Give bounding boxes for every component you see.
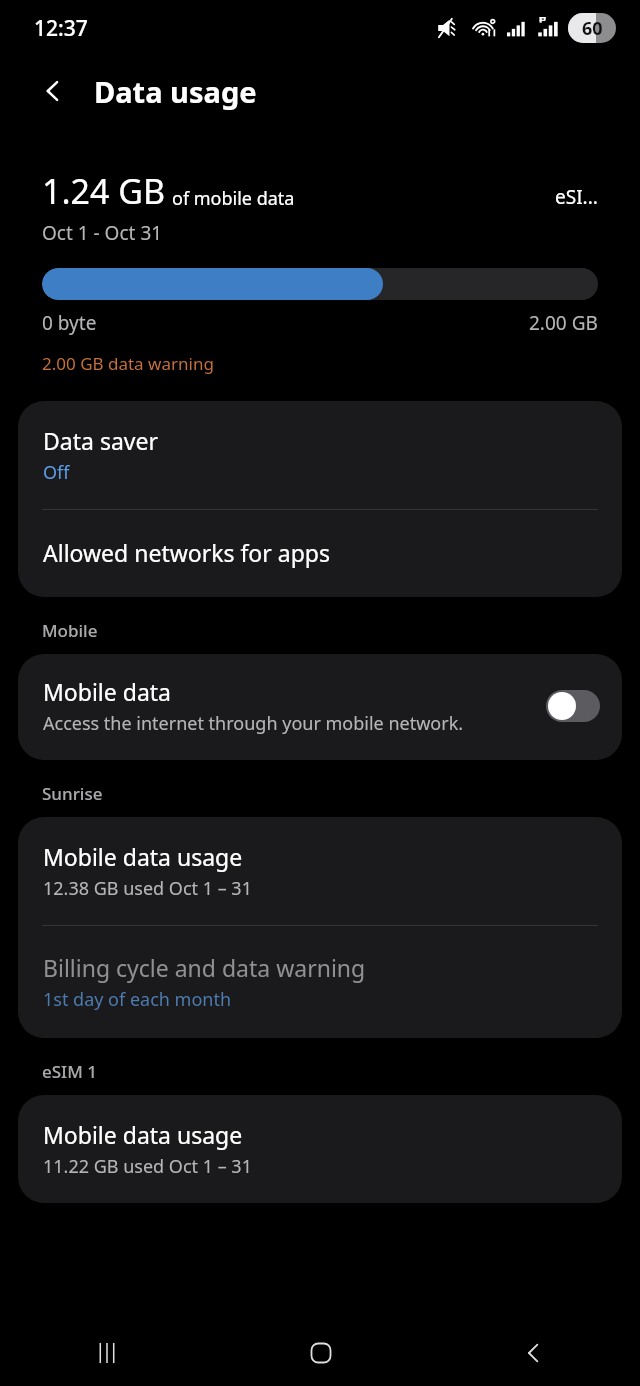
staticText: 11.22 GB used Oct 1 – 31 (43, 1154, 252, 1179)
staticText: Mobile data (43, 676, 171, 707)
staticText: 60 (582, 16, 603, 41)
staticText: 1.24 GB (42, 168, 166, 214)
staticText: 1st day of each month (43, 987, 232, 1012)
button[interactable]: Mobile data usage (18, 817, 622, 925)
button[interactable]: Mobile data toggle (546, 690, 600, 722)
staticText: 2.00 GB data warning (42, 352, 214, 375)
button[interactable]: eSI... (555, 184, 598, 210)
button[interactable]: Billing cycle and data warning (18, 926, 622, 1038)
staticText: Allowed networks for apps (43, 537, 330, 568)
button[interactable]: Allowed networks for apps (18, 510, 622, 597)
staticText: eSI... (555, 184, 598, 210)
staticText: Mobile data usage (43, 1119, 243, 1150)
button[interactable]: Recents (0, 1320, 214, 1386)
staticText: Data usage (94, 72, 257, 111)
staticText: Mobile data usage (43, 841, 243, 872)
staticText: Data saver (43, 425, 158, 456)
staticText: of mobile data (172, 186, 295, 211)
button[interactable]: Mobile data (18, 654, 622, 760)
staticText: Billing cycle and data warning (43, 952, 366, 983)
staticText: 12.38 GB used Oct 1 – 31 (43, 876, 252, 901)
button[interactable]: Home (214, 1320, 427, 1386)
staticText: Oct 1 - Oct 31 (42, 220, 163, 246)
button[interactable]: Mobile data usage (18, 1095, 622, 1203)
staticText: eSIM 1 (42, 1060, 97, 1083)
staticText: 12:37 (34, 14, 88, 43)
staticText: Mobile (42, 619, 98, 642)
staticText: Off (43, 460, 70, 485)
staticText: 2.00 GB (529, 310, 598, 336)
button[interactable]: Data saver (18, 401, 622, 509)
staticText: Access the internet through your mobile … (43, 711, 464, 736)
button[interactable]: Back (30, 67, 78, 115)
staticText: 0 byte (42, 310, 97, 336)
staticText: Sunrise (42, 782, 103, 805)
button[interactable]: Back (427, 1320, 640, 1386)
